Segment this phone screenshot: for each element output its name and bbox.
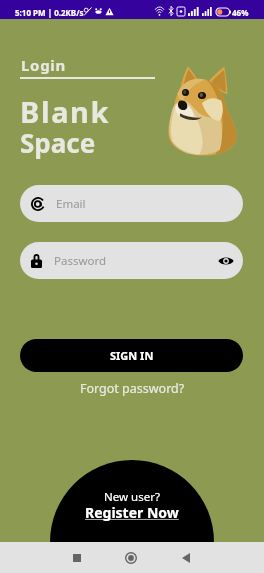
button[interactable]: Home (116, 543, 146, 573)
button[interactable]: SIGN IN (20, 339, 243, 372)
staticText: Blank (20, 92, 111, 131)
staticText: Register Now (85, 503, 179, 522)
staticText: Login (21, 55, 66, 75)
staticText: Forgot password? (80, 380, 185, 397)
staticText: SIGN IN (110, 348, 154, 363)
staticText: 5:10 PM | 0.2KB/s (15, 7, 84, 18)
button[interactable]: Password (20, 242, 243, 279)
staticText: 46% (232, 7, 249, 18)
button[interactable]: Recent apps (62, 543, 92, 573)
staticText: Password (54, 253, 107, 269)
staticText: New user? (104, 489, 160, 505)
staticText: Email (56, 196, 86, 212)
button[interactable]: Register Now (81, 501, 183, 524)
button[interactable]: Back (171, 543, 201, 573)
button[interactable]: Email (20, 185, 243, 222)
button[interactable]: Forgot password? (76, 376, 189, 401)
button[interactable]: Show password (216, 251, 236, 271)
staticText: Space (20, 125, 96, 160)
